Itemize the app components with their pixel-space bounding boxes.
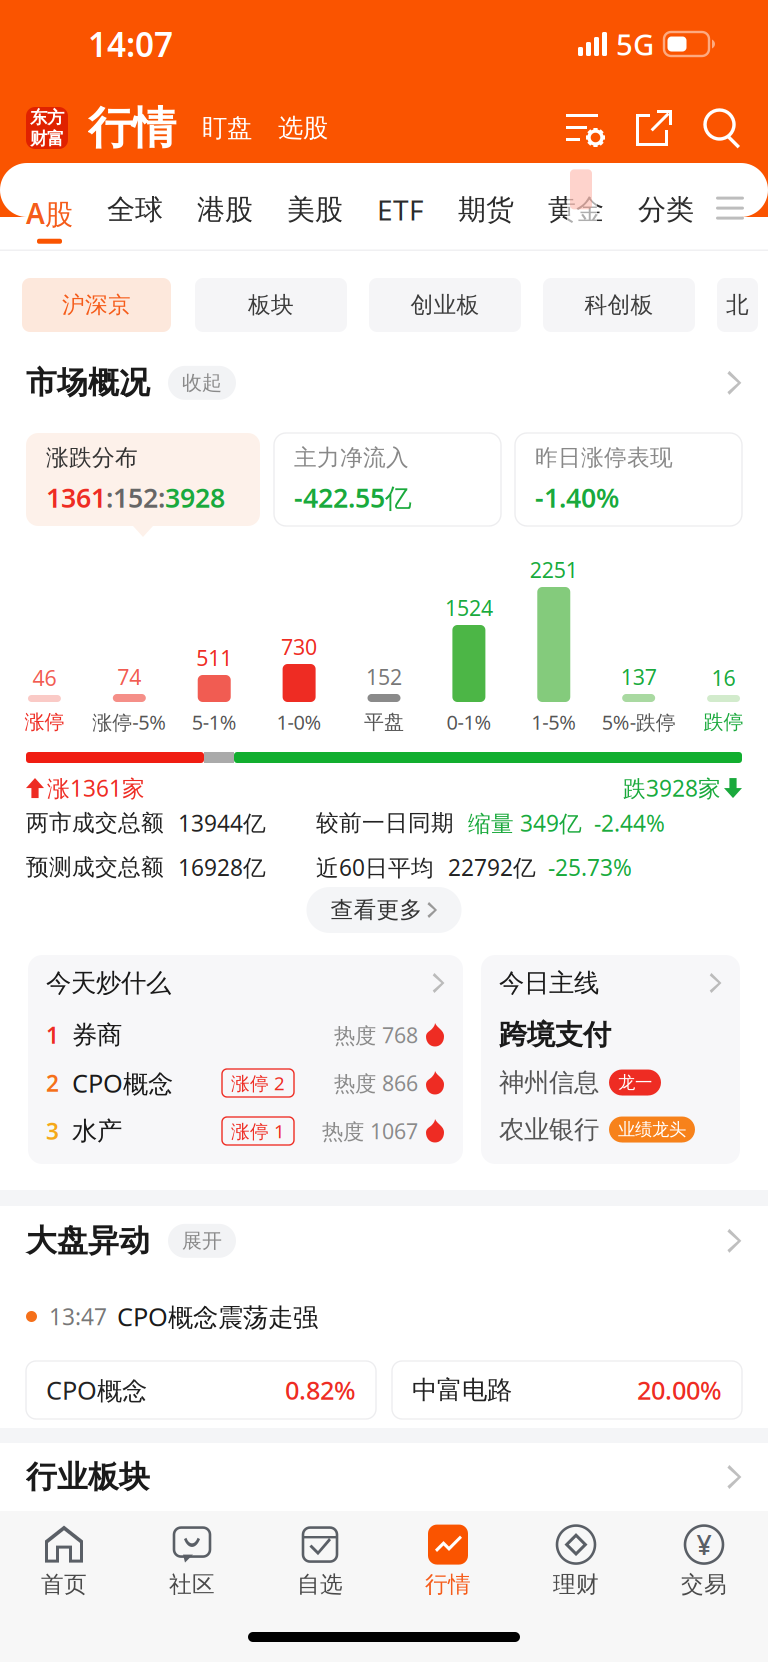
button[interactable]: 社区 [128, 1511, 256, 1612]
staticText: 行情 [425, 1571, 471, 1598]
button[interactable]: 主力净流入 [274, 433, 501, 526]
button[interactable]: 查看更多 [306, 887, 461, 933]
staticText: 龙一 [618, 1072, 652, 1093]
staticText: A股 [26, 194, 73, 232]
staticText: 74 [117, 663, 141, 691]
staticText: -422.55亿 [294, 480, 412, 515]
staticText: 社区 [169, 1571, 215, 1598]
staticText: 港股 [197, 192, 253, 227]
staticText: 20.00% [637, 1373, 722, 1407]
staticText: 3928 [165, 480, 225, 515]
staticText: 券商 [72, 1019, 122, 1050]
button[interactable]: 昨日涨停表现 [515, 433, 742, 526]
staticText: 选股 [278, 112, 328, 143]
staticText: 5%-跌停 [602, 709, 676, 735]
staticText: 首页 [41, 1571, 87, 1598]
button[interactable]: 今日主线 [499, 955, 722, 1011]
button[interactable]: 分享 [606, 108, 674, 148]
staticText: 今天炒什么 [46, 967, 171, 998]
staticText: 交易 [681, 1571, 727, 1598]
button[interactable]: 全球 [107, 164, 163, 246]
staticText: 北 [726, 291, 749, 319]
button[interactable]: 盯盘 [176, 102, 252, 153]
button[interactable]: 搜索 [674, 108, 744, 148]
staticText: : [106, 480, 113, 515]
staticText: 黄金 [548, 192, 604, 227]
button[interactable]: 沪深京 [22, 278, 171, 332]
button[interactable]: 期货 [458, 164, 514, 246]
staticText: 涨停 [24, 710, 64, 734]
button[interactable]: A股 [26, 166, 73, 244]
staticText: 1524 [445, 594, 493, 622]
staticText: 水产 [72, 1115, 122, 1146]
staticText: : [158, 480, 165, 515]
button[interactable]: 行情 [384, 1511, 512, 1612]
staticText: 1-0% [277, 709, 322, 735]
button[interactable]: 1 [46, 1011, 445, 1059]
staticText: 跨境支付 [499, 1018, 611, 1052]
button[interactable]: 今天炒什么 [46, 955, 445, 1011]
button[interactable]: 北 [717, 278, 758, 332]
button[interactable]: 大盘异动 [0, 1206, 768, 1292]
button[interactable]: 分类 [638, 164, 694, 246]
staticText: 1361 [46, 480, 106, 515]
button[interactable]: CPO概念 [26, 1361, 376, 1419]
staticText: -2.44% [594, 808, 665, 838]
button[interactable]: 首页 [0, 1511, 128, 1612]
staticText: 中富电路 [412, 1374, 512, 1405]
staticText: 科创板 [584, 291, 653, 319]
staticText: 大盘异动 [26, 1222, 150, 1260]
button[interactable]: ETF [377, 163, 424, 247]
staticText: 152 [366, 663, 402, 691]
staticText: 1 [46, 1020, 59, 1050]
staticText: 涨停-5% [92, 709, 166, 735]
staticText: 跌3928家 [623, 773, 721, 803]
button[interactable]: 板块 [195, 278, 347, 332]
button[interactable]: 更多分类 [714, 187, 746, 223]
staticText: 1-5% [531, 709, 576, 735]
staticText: 两市成交总额 [26, 809, 164, 837]
staticText: 今日主线 [499, 967, 599, 998]
button[interactable]: 创业板 [369, 278, 521, 332]
button[interactable]: ¥ [640, 1511, 768, 1612]
staticText: 理财 [553, 1571, 599, 1598]
staticText: 农业银行 [499, 1114, 599, 1145]
staticText: 涨跌分布 [46, 444, 138, 472]
staticText: 行情 [88, 101, 176, 155]
staticText: 13:47 [49, 1301, 107, 1331]
staticText: -25.73% [548, 852, 632, 882]
staticText: 较前一日同期 [316, 809, 454, 837]
staticText: 板块 [248, 291, 294, 319]
button[interactable]: 选股 [252, 102, 328, 153]
staticText: 0-1% [446, 709, 491, 735]
staticText: CPO概念震荡走强 [117, 1300, 318, 1333]
staticText: 22792亿 [448, 852, 536, 882]
button[interactable]: 自选 [256, 1511, 384, 1612]
staticText: 东方 [30, 107, 64, 128]
staticText: 涨停 2 [231, 1071, 285, 1095]
button[interactable]: 美股 [287, 164, 343, 246]
staticText: 全球 [107, 192, 163, 227]
staticText: 5G [616, 24, 654, 63]
staticText: 热度 1067 [322, 1117, 418, 1145]
button[interactable]: 理财 [512, 1511, 640, 1612]
staticText: ETF [377, 191, 424, 228]
button[interactable]: 筛选设置 [566, 110, 606, 146]
staticText: 行业板块 [26, 1458, 150, 1496]
staticText: 自选 [297, 1571, 343, 1598]
button[interactable]: 市场概况 [0, 344, 768, 420]
staticText: 730 [281, 633, 317, 661]
button[interactable]: 3 [46, 1107, 445, 1155]
button[interactable]: 2 [46, 1059, 445, 1107]
staticText: 2 [46, 1068, 59, 1098]
staticText: 511 [196, 644, 232, 672]
staticText: 主力净流入 [294, 444, 409, 472]
button[interactable]: 科创板 [543, 278, 695, 332]
staticText: 0.82% [285, 1373, 356, 1407]
staticText: 152 [113, 480, 158, 515]
button[interactable]: 黄金 [548, 164, 604, 246]
button[interactable]: 行业板块 [0, 1443, 768, 1511]
staticText: 跌停 [704, 710, 744, 734]
button[interactable]: 港股 [197, 164, 253, 246]
button[interactable]: 中富电路 [392, 1361, 742, 1419]
